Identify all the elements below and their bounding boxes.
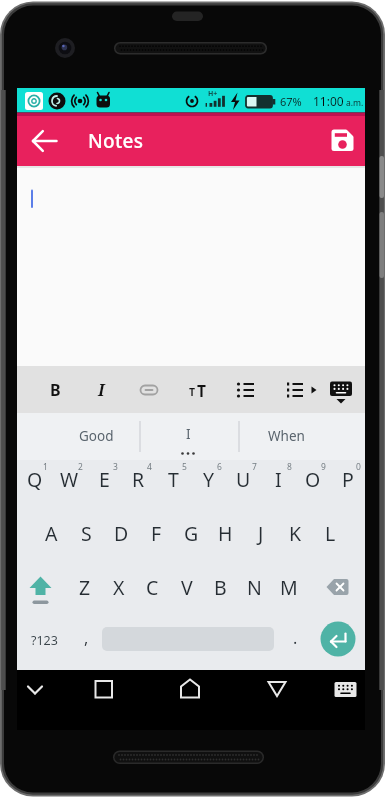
staticText: Good xyxy=(79,427,114,445)
staticText: Y xyxy=(203,466,215,493)
staticText: 9 xyxy=(321,461,326,473)
button[interactable] xyxy=(256,670,298,712)
staticText: 8 xyxy=(287,461,292,473)
staticText: 5 xyxy=(182,461,187,473)
button[interactable]: F xyxy=(139,507,174,560)
staticText: D xyxy=(114,520,129,547)
button[interactable] xyxy=(17,566,64,608)
button[interactable]: I xyxy=(118,412,258,456)
staticText: 67% xyxy=(280,94,302,109)
staticText: G xyxy=(184,520,199,547)
staticText: V xyxy=(181,574,193,601)
staticText: I xyxy=(98,379,105,401)
staticText: 2 xyxy=(78,461,83,473)
button[interactable] xyxy=(17,413,140,460)
button[interactable]: J xyxy=(243,507,278,560)
staticText: X xyxy=(113,574,125,601)
staticText: 6 xyxy=(217,461,222,473)
staticText: H+ xyxy=(208,89,218,99)
button[interactable]: M xyxy=(271,561,306,614)
staticText: Q xyxy=(27,466,43,493)
staticText: U xyxy=(236,466,251,493)
staticText: T xyxy=(197,380,206,401)
button[interactable]: U xyxy=(226,453,261,506)
staticText: H xyxy=(218,520,233,547)
button[interactable] xyxy=(278,620,312,668)
button[interactable]: H xyxy=(208,507,243,560)
staticText: 0 xyxy=(356,461,361,473)
staticText: J xyxy=(258,520,264,547)
staticText: R xyxy=(132,466,145,493)
button[interactable] xyxy=(320,566,365,608)
button[interactable] xyxy=(83,670,125,712)
button[interactable]: W xyxy=(52,453,87,506)
staticText: S xyxy=(81,520,92,547)
button[interactable]: C xyxy=(135,561,170,614)
button[interactable] xyxy=(102,620,274,668)
staticText: 4 xyxy=(147,461,152,473)
button[interactable]: I xyxy=(261,453,296,506)
button[interactable]: X xyxy=(101,561,136,614)
button[interactable] xyxy=(318,112,365,166)
button[interactable]: L xyxy=(313,507,348,560)
staticText: . xyxy=(293,627,298,649)
button[interactable]: S xyxy=(69,507,104,560)
button[interactable]: Z xyxy=(67,561,102,614)
button[interactable]: Q xyxy=(17,453,52,506)
button[interactable] xyxy=(173,366,219,413)
staticText: K xyxy=(289,520,302,547)
button[interactable]: E xyxy=(87,453,122,506)
button[interactable] xyxy=(318,366,364,413)
staticText: 7 xyxy=(252,461,257,473)
staticText: T xyxy=(168,466,179,493)
button[interactable] xyxy=(17,112,72,166)
button[interactable] xyxy=(32,366,78,413)
staticText: , xyxy=(84,627,89,649)
button[interactable] xyxy=(140,413,239,460)
staticText: M xyxy=(280,574,298,601)
button[interactable]: O xyxy=(295,453,330,506)
button[interactable]: R xyxy=(121,453,156,506)
staticText: F xyxy=(151,520,162,547)
button[interactable] xyxy=(223,366,269,413)
button[interactable] xyxy=(318,620,362,668)
button[interactable]: V xyxy=(169,561,204,614)
staticText: Notes xyxy=(88,128,144,154)
button[interactable]: A xyxy=(34,507,69,560)
button[interactable]: K xyxy=(278,507,313,560)
staticText: I xyxy=(186,425,191,443)
staticText: P xyxy=(342,466,354,493)
staticText: a.m. xyxy=(346,97,364,109)
staticText: ?123 xyxy=(31,632,58,649)
staticText: N xyxy=(247,574,262,601)
staticText: E xyxy=(99,466,110,493)
button[interactable]: B xyxy=(203,561,238,614)
button[interactable]: T xyxy=(156,453,191,506)
staticText: W xyxy=(60,466,79,493)
button[interactable]: N xyxy=(237,561,272,614)
button[interactable] xyxy=(17,620,69,668)
button[interactable]: When xyxy=(216,414,356,458)
button[interactable]: Good xyxy=(26,414,166,458)
staticText: B xyxy=(50,379,61,401)
button[interactable] xyxy=(169,670,211,712)
button[interactable] xyxy=(239,413,365,460)
button[interactable] xyxy=(78,366,124,413)
staticText: 3 xyxy=(113,461,118,473)
staticText: L xyxy=(325,520,336,547)
button[interactable]: P xyxy=(330,453,365,506)
staticText: When xyxy=(268,427,305,445)
button[interactable]: G xyxy=(174,507,209,560)
button[interactable] xyxy=(14,670,56,712)
button[interactable]: D xyxy=(104,507,139,560)
staticText: Z xyxy=(79,574,91,601)
button[interactable]: Y xyxy=(191,453,226,506)
staticText: 1 xyxy=(43,461,48,473)
button[interactable] xyxy=(325,670,367,712)
button[interactable] xyxy=(126,366,172,413)
button[interactable] xyxy=(69,620,102,668)
staticText: T xyxy=(189,385,196,399)
staticText: I xyxy=(275,466,282,493)
button[interactable] xyxy=(277,366,323,413)
staticText: B xyxy=(214,574,227,601)
